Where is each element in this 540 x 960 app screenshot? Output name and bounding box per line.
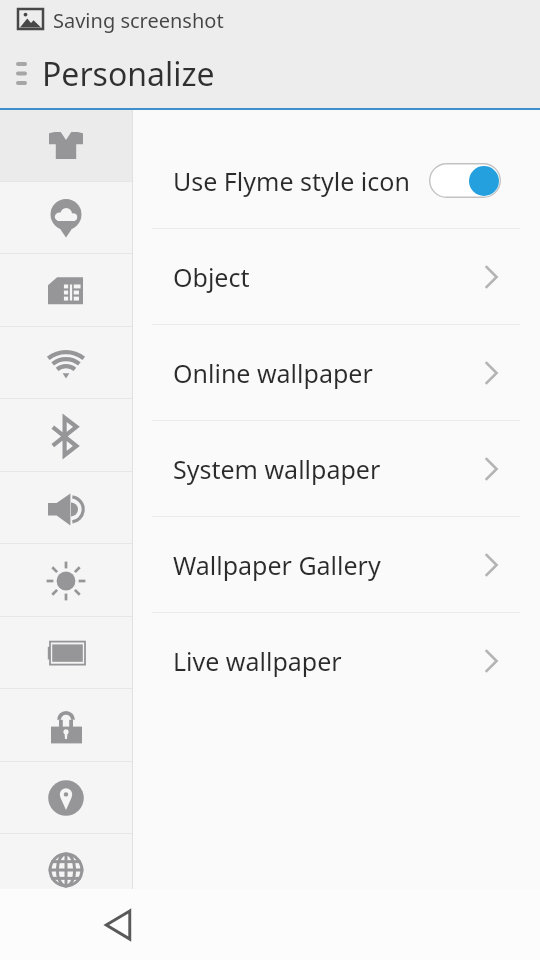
staticText: Wallpaper Gallery (173, 548, 381, 582)
staticText: Online wallpaper (173, 356, 373, 390)
button[interactable]: Object (133, 229, 540, 324)
button[interactable]: Use Flyme style icon (133, 133, 540, 228)
button[interactable]: Live wallpaper (133, 613, 540, 708)
button[interactable]: Menu (3, 55, 39, 91)
button[interactable]: Settings category (0, 327, 132, 399)
button[interactable]: Settings category (0, 690, 132, 762)
button[interactable]: Settings category (0, 545, 132, 617)
staticText: Object (173, 260, 250, 294)
button[interactable]: Settings category (0, 110, 132, 182)
staticText: Live wallpaper (173, 644, 342, 678)
button[interactable]: Settings category (0, 762, 132, 834)
button[interactable]: Settings category (0, 472, 132, 544)
button[interactable]: Back (88, 895, 148, 955)
button[interactable]: Settings category (0, 617, 132, 689)
button[interactable]: Online wallpaper (133, 325, 540, 420)
button[interactable]: System wallpaper (133, 421, 540, 516)
staticText: System wallpaper (173, 452, 381, 486)
staticText: Use Flyme style icon (173, 164, 410, 198)
button[interactable]: Settings category (0, 255, 132, 327)
button[interactable]: Settings category (0, 400, 132, 472)
staticText: Saving screenshot (53, 7, 224, 34)
button[interactable]: Settings category (0, 834, 132, 889)
button[interactable]: Wallpaper Gallery (133, 517, 540, 612)
button[interactable]: Settings category (0, 182, 132, 254)
staticText: Personalize (42, 52, 215, 96)
